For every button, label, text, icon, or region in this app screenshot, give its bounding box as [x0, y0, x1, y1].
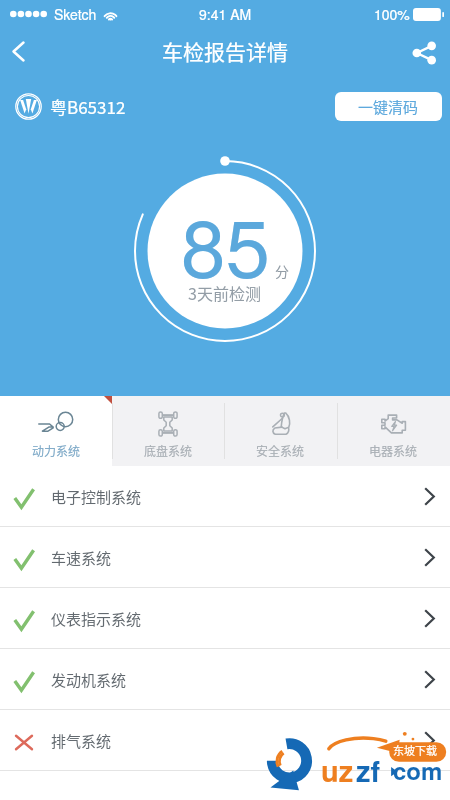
staticText: 发动机系统	[51, 669, 127, 691]
button[interactable]: Back	[0, 30, 37, 76]
button[interactable]: 发动机系统	[0, 649, 450, 710]
button[interactable]: 一键清码	[335, 92, 442, 121]
staticText: 粤B65312	[50, 94, 126, 119]
button[interactable]: 电器系统	[337, 396, 450, 466]
staticText: zf	[356, 749, 381, 791]
button[interactable]: 动力系统	[0, 396, 112, 466]
staticText: 东坡下载	[393, 742, 437, 758]
button[interactable]: 底盘系统	[112, 396, 224, 466]
staticText: 电子控制系统	[51, 486, 142, 508]
staticText: 底盘系统	[144, 442, 193, 459]
button[interactable]: 车速系统	[0, 527, 450, 588]
staticText: Sketch	[54, 4, 97, 24]
button[interactable]: 仪表指示系统	[0, 588, 450, 649]
staticText: 85	[181, 186, 270, 301]
button[interactable]: Share	[397, 30, 450, 76]
staticText: 排气系统	[51, 730, 112, 752]
staticText: com	[393, 753, 443, 787]
button[interactable]: 排气系统	[0, 710, 450, 771]
staticText: 仪表指示系统	[51, 608, 142, 630]
staticText: 车检报告详情	[162, 36, 288, 66]
staticText: 安全系统	[256, 442, 305, 459]
staticText: 9:41 AM	[199, 4, 252, 24]
staticText: 动力系统	[32, 442, 81, 459]
staticText: 车速系统	[51, 547, 112, 569]
staticText: 100%	[374, 4, 410, 24]
button[interactable]: 电子控制系统	[0, 466, 450, 527]
staticText: 3天前检测	[188, 281, 261, 304]
staticText: 一键清码	[358, 96, 419, 118]
staticText: uz	[321, 749, 354, 791]
button[interactable]: 安全系统	[224, 396, 337, 466]
staticText: 电器系统	[369, 442, 418, 459]
staticText: 分	[275, 261, 289, 281]
